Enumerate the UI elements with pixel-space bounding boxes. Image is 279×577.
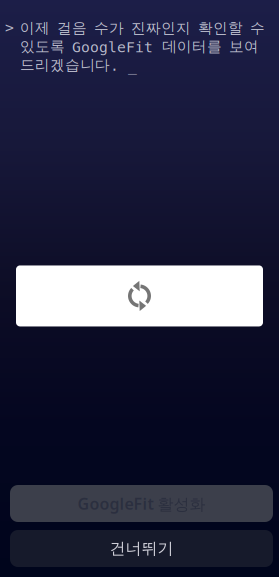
button[interactable]: GoogleFit 활성화 <box>10 485 273 522</box>
button[interactable]: 건너뛰기 <box>10 530 273 567</box>
staticText: > <box>5 19 14 36</box>
staticText: GoogleFit 활성화 <box>77 493 205 514</box>
staticText: 건너뛰기 <box>109 539 173 558</box>
staticText: 이제 걸음 수가 진짜인지 확인할 수 있도록 GoogleFit 데이터를 보… <box>20 19 265 74</box>
